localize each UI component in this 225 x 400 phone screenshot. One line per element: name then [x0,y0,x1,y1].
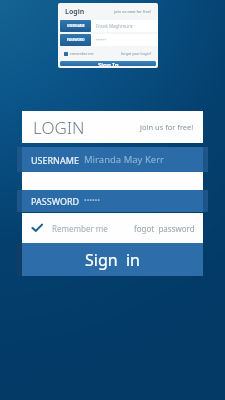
staticText: join us now for free! [114,9,152,14]
button[interactable] [17,147,208,172]
button[interactable] [17,190,208,212]
staticText: LOGIN [33,116,85,139]
staticText: forgot your Login? [121,51,152,56]
button[interactable]: Sign In [60,61,156,66]
staticText: Sign in [85,249,140,271]
button[interactable]: Remember me [31,222,108,234]
staticText: USERNAME [67,24,85,28]
staticText: Sign In [98,61,119,66]
staticText: Frank Maghmure [96,23,133,29]
button[interactable]: PASSWORD [60,34,158,46]
staticText: •••••• [84,196,100,206]
staticText: Remember me [52,223,108,234]
staticText: join us for free! [140,122,194,132]
staticText: Login [65,7,85,17]
staticText: Miranda May Kerr [84,153,164,166]
staticText: PASSWORD [67,38,85,42]
staticText: PASSWORD [31,195,80,207]
button[interactable]: USERNAME [60,20,158,32]
staticText: remember me [70,51,94,56]
button[interactable]: Login [58,3,158,68]
button[interactable]: LOGIN [22,111,203,143]
staticText: •••••• [96,37,107,43]
button[interactable]: Sign in [22,243,203,276]
staticText: USERNAME [31,154,79,166]
button[interactable]: fogot password [134,223,195,234]
